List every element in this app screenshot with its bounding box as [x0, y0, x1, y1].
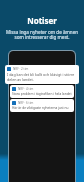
staticText: Stora problem i tågtrafiken i hela lande…	[12, 92, 72, 96]
staticText: Här är de viktigaste nyheterna just nu	[12, 106, 69, 110]
staticText: NRF · 2 tim	[13, 67, 29, 71]
staticText: Notiser	[27, 15, 57, 26]
button[interactable]: NRF · 4 tim	[10, 85, 74, 98]
button[interactable]: NRF · 6 tim	[10, 99, 74, 112]
staticText: I dag kan det bli kallt och blåsigt i st…	[7, 72, 77, 82]
staticText: Missa inga nyheter om de ämnen som intre…	[3, 29, 81, 41]
button[interactable]: NRF · 2 tim	[5, 65, 79, 84]
staticText: NRF · 4 tim	[18, 87, 34, 91]
staticText: NRF · 6 tim	[18, 101, 34, 105]
